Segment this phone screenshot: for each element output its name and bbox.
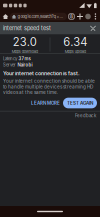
staticText: Latency bbox=[3, 56, 17, 61]
button[interactable]: More options bbox=[92, 11, 99, 22]
button[interactable]: Feedback bbox=[71, 111, 100, 120]
staticText: 37 ms bbox=[18, 56, 30, 61]
staticText: Mbps upload bbox=[65, 49, 86, 54]
button[interactable]: Address bar bbox=[10, 13, 67, 20]
staticText: 23.0 bbox=[13, 35, 37, 49]
staticText: Feedback bbox=[75, 113, 96, 118]
staticText: 8 bbox=[70, 14, 73, 19]
staticText: internet speed test bbox=[3, 25, 51, 32]
staticText: Your internet connection should be able … bbox=[3, 78, 95, 95]
button[interactable]: TEST AGAIN bbox=[63, 98, 97, 108]
staticText: google.com/search?q=internet+sp bbox=[17, 14, 63, 19]
staticText: Your internet connection is fast. bbox=[3, 70, 80, 77]
staticText: Server bbox=[3, 62, 16, 68]
button[interactable]: Home bbox=[1, 11, 10, 22]
button[interactable]: Tabs bbox=[67, 11, 76, 22]
staticText: Mbps download bbox=[12, 49, 38, 54]
staticText: 6.34 bbox=[63, 35, 87, 49]
button[interactable]: Account bbox=[84, 11, 92, 22]
staticText: TEST AGAIN bbox=[67, 100, 93, 106]
button[interactable]: Search internet speed test bbox=[0, 22, 100, 34]
button[interactable]: New tab bbox=[76, 11, 84, 22]
button[interactable]: LEARN MORE bbox=[28, 98, 63, 108]
staticText: Nairobi bbox=[17, 62, 32, 68]
staticText: LEARN MORE bbox=[31, 100, 60, 106]
